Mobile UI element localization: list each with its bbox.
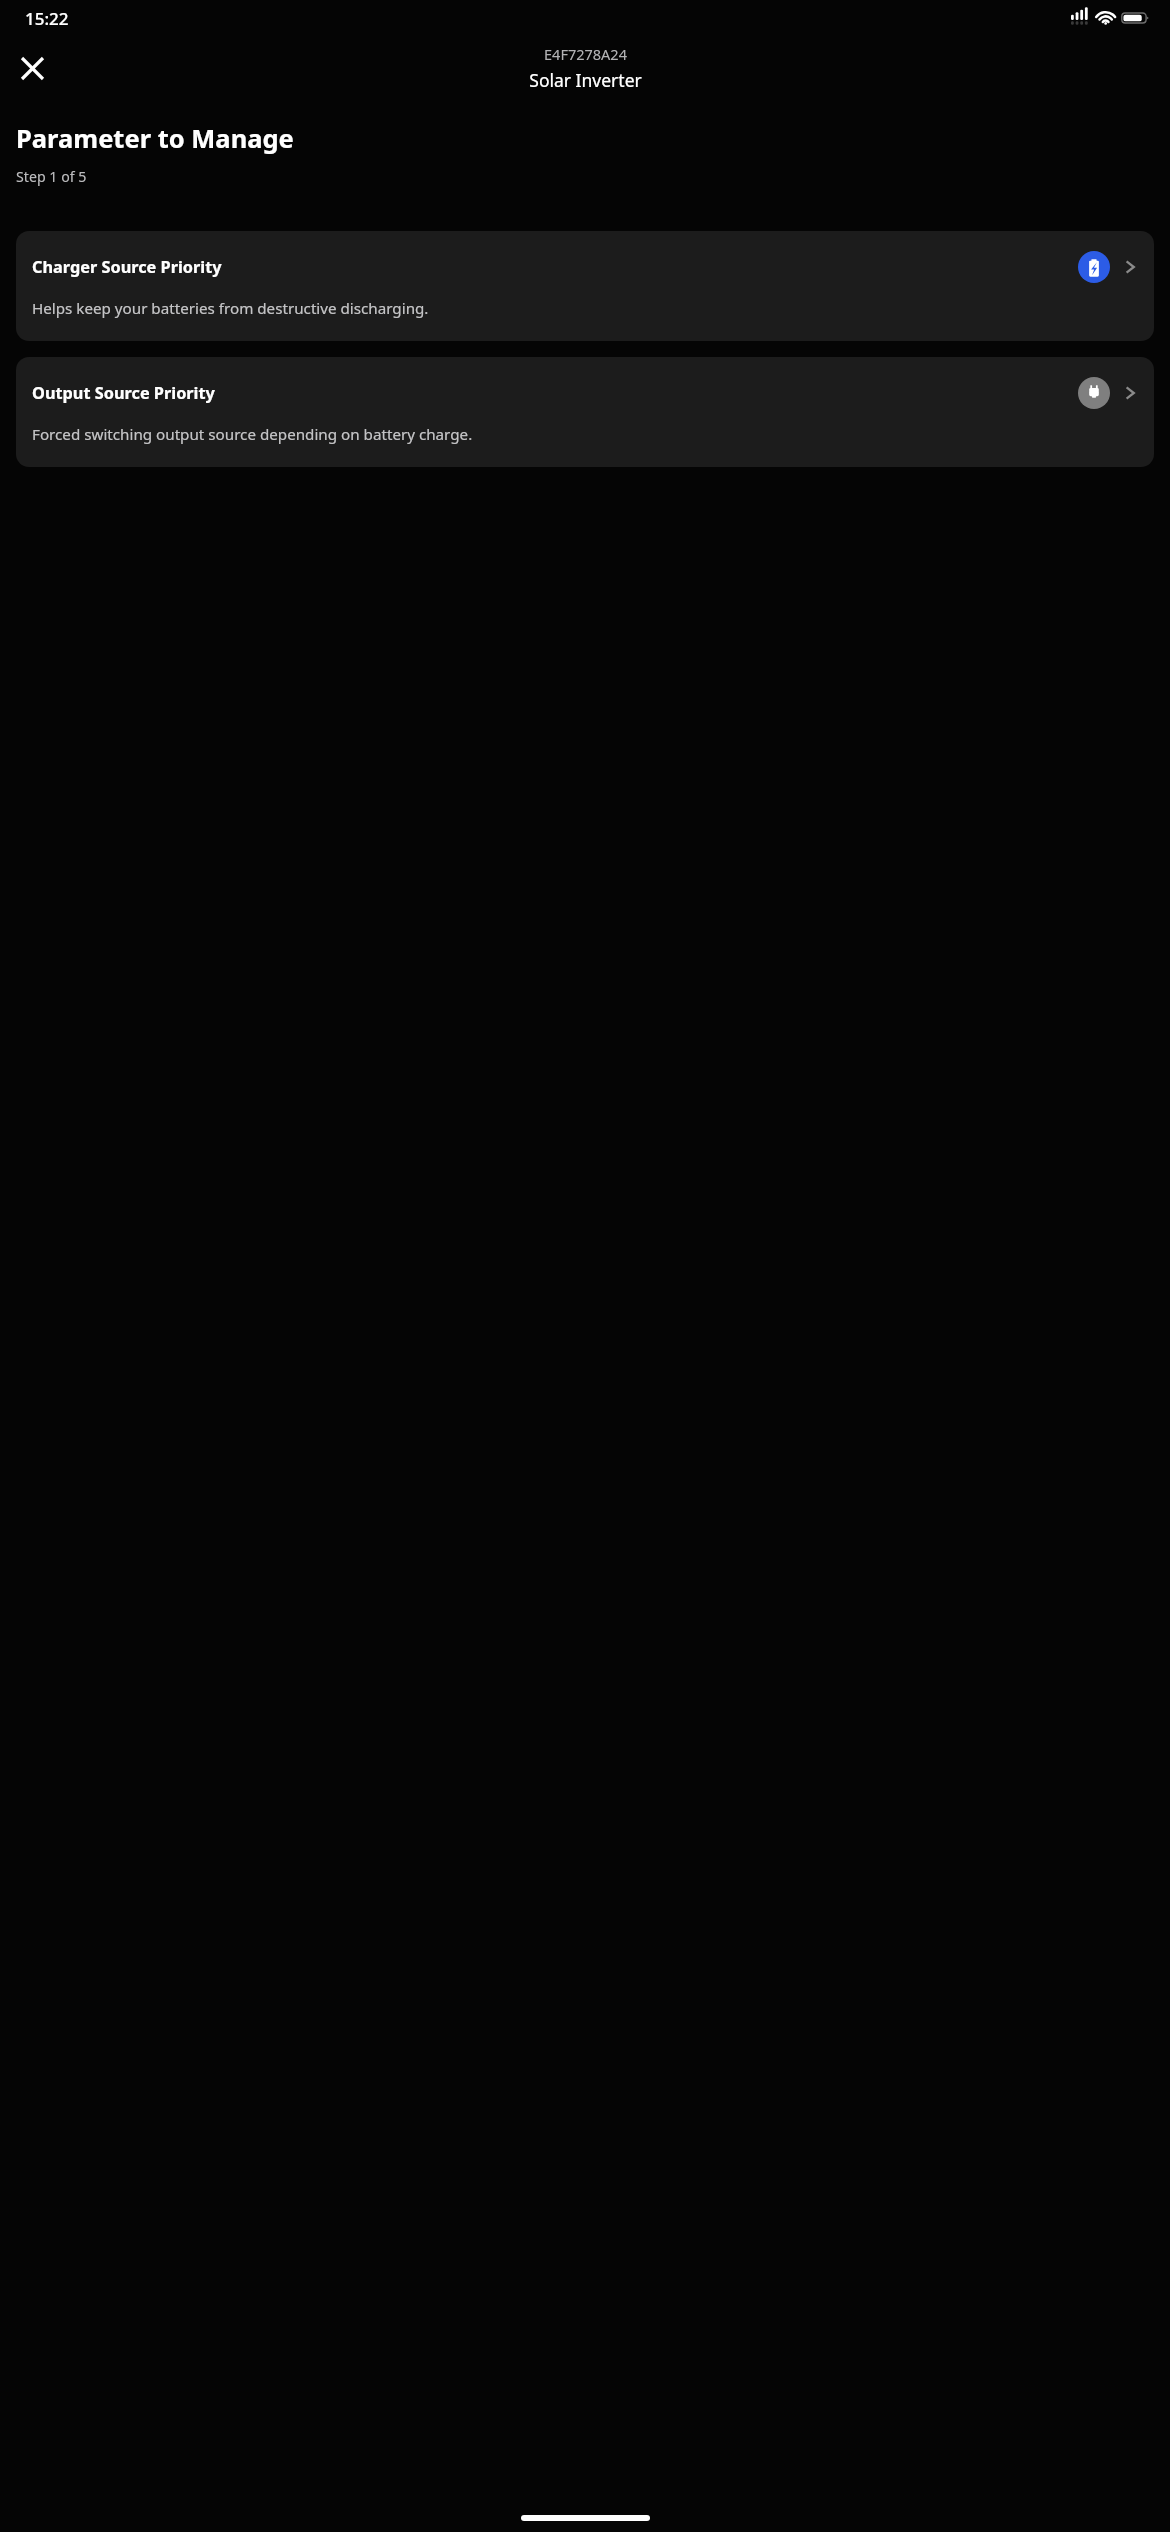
staticText: Step 1 of 5 — [16, 167, 87, 186]
staticText: Forced switching output source depending… — [32, 424, 473, 445]
staticText: 15:22 — [25, 7, 69, 30]
button[interactable]: Close — [8, 44, 56, 92]
staticText: Charger Source Priority — [32, 256, 1078, 278]
button[interactable]: Charger Source Priority — [16, 231, 1154, 341]
staticText: Parameter to Manage — [16, 121, 294, 156]
staticText: Solar Inverter — [529, 68, 642, 92]
staticText: Helps keep your batteries from destructi… — [32, 298, 429, 319]
staticText: E4F7278A24 — [544, 44, 627, 64]
button[interactable]: Output Source Priority — [16, 357, 1154, 467]
staticText: Output Source Priority — [32, 382, 1078, 404]
